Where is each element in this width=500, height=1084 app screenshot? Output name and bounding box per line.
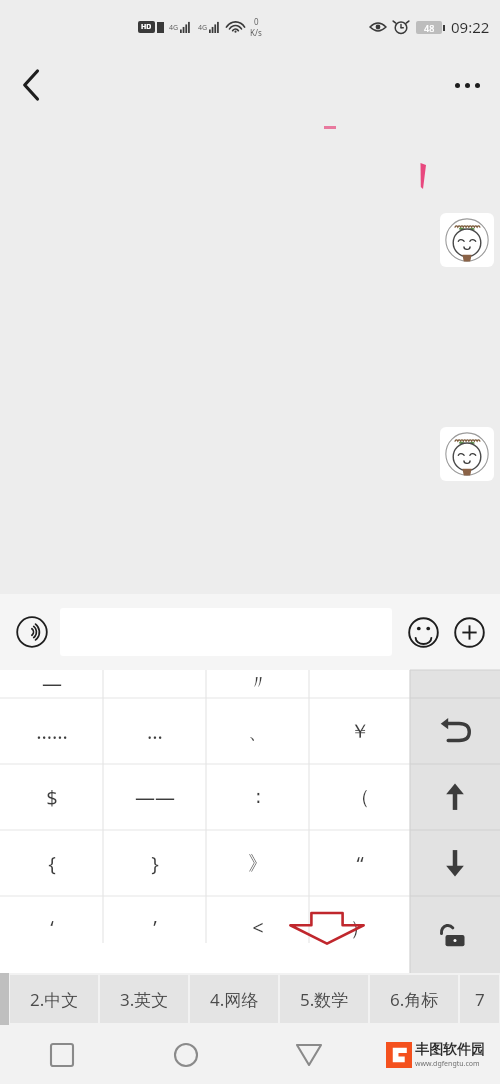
staticText: 4G (198, 23, 208, 33)
staticText: { (48, 850, 56, 877)
staticText: 4G (169, 23, 179, 33)
staticText: 4.网络 (210, 988, 259, 1011)
staticText: 48 (424, 22, 435, 34)
staticText: —— (135, 784, 175, 811)
staticText: 》 (248, 851, 268, 876)
staticText: ’ (153, 914, 157, 941)
staticText: 7 (475, 988, 485, 1011)
button[interactable]: 3.英文 (100, 975, 188, 1023)
staticText: 、 (248, 719, 268, 744)
staticText: < (252, 914, 264, 941)
button[interactable]: Back (8, 62, 54, 108)
staticText: K/s (250, 27, 262, 38)
button[interactable]: — (0, 670, 103, 698)
button[interactable]: Back (247, 1025, 370, 1084)
staticText: ‘ (50, 914, 54, 941)
staticText: } (151, 850, 159, 877)
staticText: （ (350, 785, 370, 810)
button[interactable]: Keyboard function (410, 830, 500, 896)
staticText: 2.中文 (30, 988, 79, 1011)
button[interactable]: More options (444, 62, 490, 108)
button[interactable]: ’ (103, 896, 206, 943)
staticText: ） (350, 916, 370, 941)
button[interactable] (103, 670, 206, 698)
button[interactable]: 4.网络 (190, 975, 278, 1023)
button[interactable]: … (103, 698, 206, 764)
button[interactable]: （ (309, 764, 410, 830)
button[interactable]: ） (309, 896, 410, 943)
button[interactable]: ∶ (206, 764, 309, 830)
button[interactable]: Keyboard function (410, 896, 500, 973)
staticText: … (147, 718, 163, 745)
button[interactable]: } (103, 830, 206, 896)
staticText: www.dgfengtu.com (415, 1059, 480, 1069)
button[interactable]: Fighting sticker (440, 427, 494, 481)
button[interactable]: Fighting sticker (440, 213, 494, 267)
staticText: ∶ (255, 786, 261, 809)
button[interactable]: { (0, 830, 103, 896)
staticText: HD (141, 22, 152, 32)
button[interactable]: < (206, 896, 309, 943)
button[interactable]: 2.中文 (10, 975, 98, 1023)
button[interactable]: 〃 (206, 670, 309, 698)
button[interactable]: 5.数学 (280, 975, 368, 1023)
button[interactable]: Recent apps (0, 1025, 124, 1084)
staticText: 3.英文 (120, 988, 169, 1011)
staticText: 6.角标 (390, 988, 439, 1011)
button[interactable]: —— (103, 764, 206, 830)
button[interactable]: ￥ (309, 698, 410, 764)
button[interactable]: Home (124, 1025, 247, 1084)
staticText: 09:22 (451, 17, 490, 37)
button[interactable]: 》 (206, 830, 309, 896)
staticText: $ (46, 784, 58, 811)
button[interactable]: Keyboard function (410, 764, 500, 830)
staticText: 5.数学 (300, 988, 349, 1011)
button[interactable] (309, 670, 410, 698)
button[interactable]: $ (0, 764, 103, 830)
button[interactable]: Keyboard function (410, 698, 500, 764)
button[interactable]: 7 (460, 975, 499, 1023)
staticText: 丰图软件园 (415, 1041, 485, 1059)
button[interactable]: 、 (206, 698, 309, 764)
staticText: …… (36, 718, 68, 745)
staticText: — (42, 670, 62, 697)
staticText: 〃 (248, 670, 268, 695)
button[interactable]: Voice input (8, 608, 56, 656)
staticText: “ (356, 850, 364, 877)
button[interactable]: ‘ (0, 896, 103, 943)
staticText: ￥ (350, 719, 370, 744)
button[interactable]: Emoji (400, 609, 446, 655)
button[interactable]: More functions (446, 609, 492, 655)
button[interactable]: 6.角标 (370, 975, 458, 1023)
button[interactable]: …… (0, 698, 103, 764)
button[interactable]: “ (309, 830, 410, 896)
staticText: 0 (254, 16, 259, 27)
